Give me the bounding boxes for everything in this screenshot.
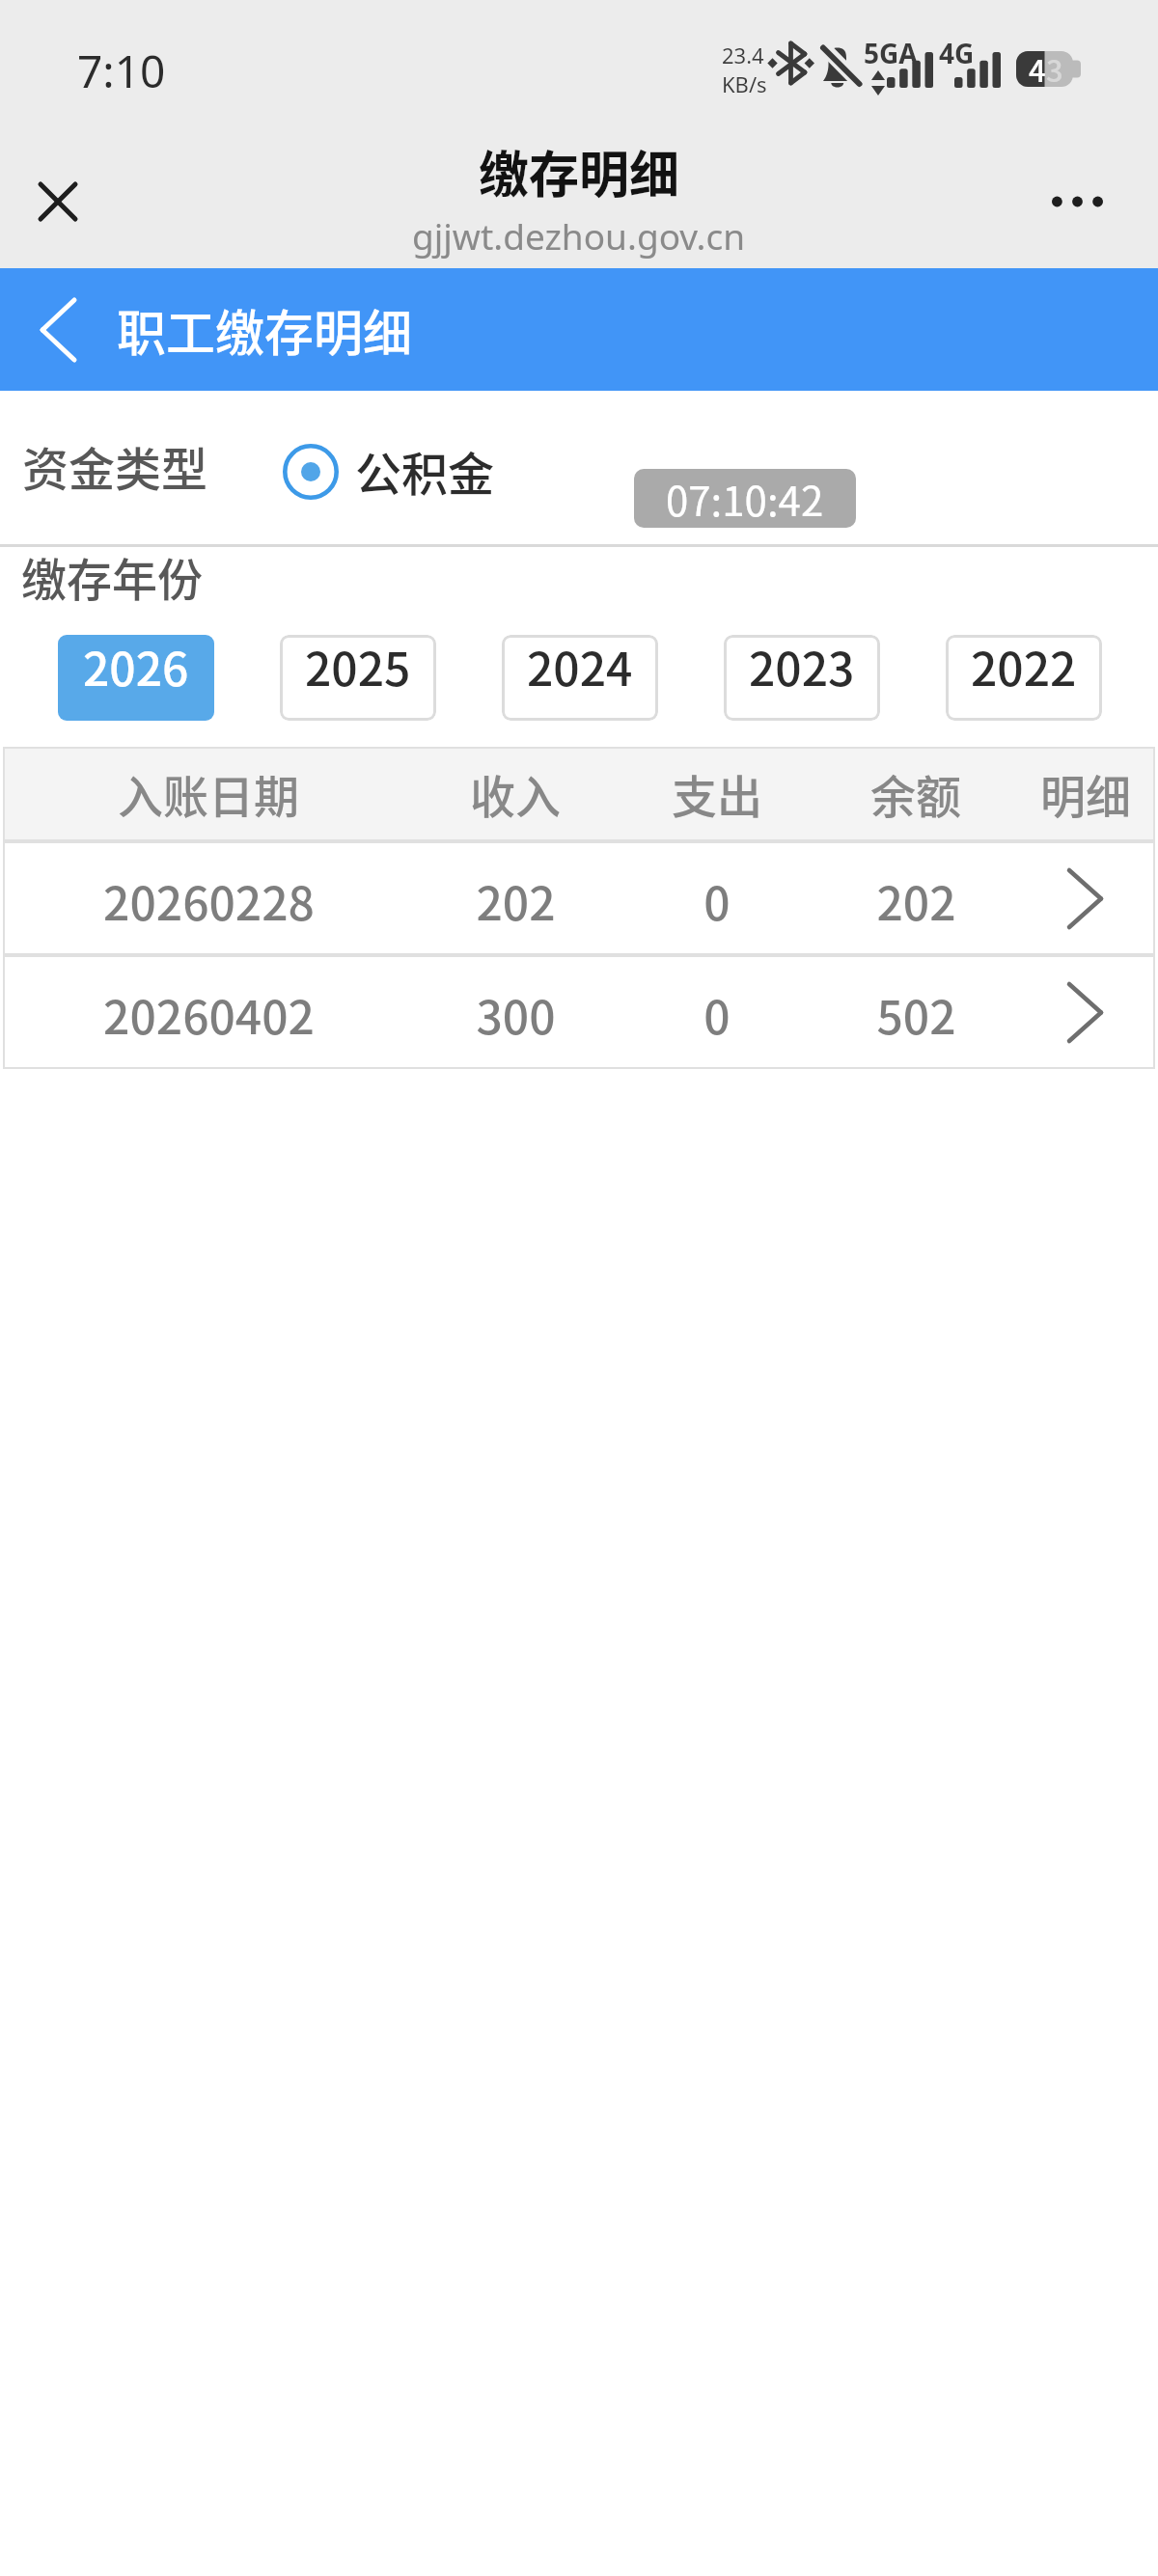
- button[interactable]: 2023: [724, 635, 880, 721]
- button[interactable]: Close: [19, 163, 96, 240]
- button[interactable]: 2022: [946, 635, 1102, 721]
- button[interactable]: 2025: [280, 635, 436, 721]
- staticText: 4: [1029, 47, 1046, 83]
- staticText: 502: [876, 980, 956, 1048]
- staticText: 20260228: [103, 866, 315, 934]
- button[interactable]: More options: [1038, 163, 1116, 240]
- staticText: 5GA: [864, 35, 918, 71]
- staticText: 2022: [971, 635, 1077, 699]
- button[interactable]: 2026: [58, 635, 214, 721]
- staticText: 2025: [305, 635, 411, 699]
- staticText: 202: [876, 866, 956, 934]
- staticText: 3: [1046, 47, 1063, 83]
- staticText: 缴存年份: [21, 543, 203, 609]
- staticText: 缴存明细: [479, 135, 680, 207]
- staticText: 2024: [527, 635, 633, 699]
- staticText: 明细: [1040, 760, 1131, 826]
- staticText: 202: [476, 866, 556, 934]
- button[interactable]: Back: [10, 282, 106, 378]
- staticText: 2023: [749, 635, 855, 699]
- staticText: 4G: [939, 35, 975, 71]
- staticText: KB/s: [722, 69, 767, 98]
- staticText: 23.4: [722, 41, 764, 69]
- staticText: 收入: [470, 760, 561, 826]
- staticText: 20260402: [103, 980, 315, 1048]
- button[interactable]: 公积金: [283, 434, 495, 502]
- staticText: 300: [476, 980, 556, 1048]
- staticText: 2026: [83, 635, 189, 699]
- staticText: 7:10: [77, 41, 166, 101]
- staticText: 余额: [870, 760, 961, 826]
- staticText: 公积金: [355, 437, 495, 505]
- button[interactable]: 20260402: [3, 955, 1155, 1069]
- staticText: 入账日期: [118, 760, 299, 826]
- staticText: 支出: [672, 760, 762, 826]
- button[interactable]: 20260228: [3, 841, 1155, 955]
- staticText: gjjwt.dezhou.gov.cn: [412, 211, 746, 260]
- button[interactable]: 2024: [502, 635, 658, 721]
- staticText: 职工缴存明细: [117, 294, 413, 366]
- staticText: 0: [703, 980, 731, 1048]
- staticText: 07:10:42: [666, 469, 824, 528]
- staticText: 资金类型: [22, 432, 208, 500]
- staticText: 0: [703, 866, 731, 934]
